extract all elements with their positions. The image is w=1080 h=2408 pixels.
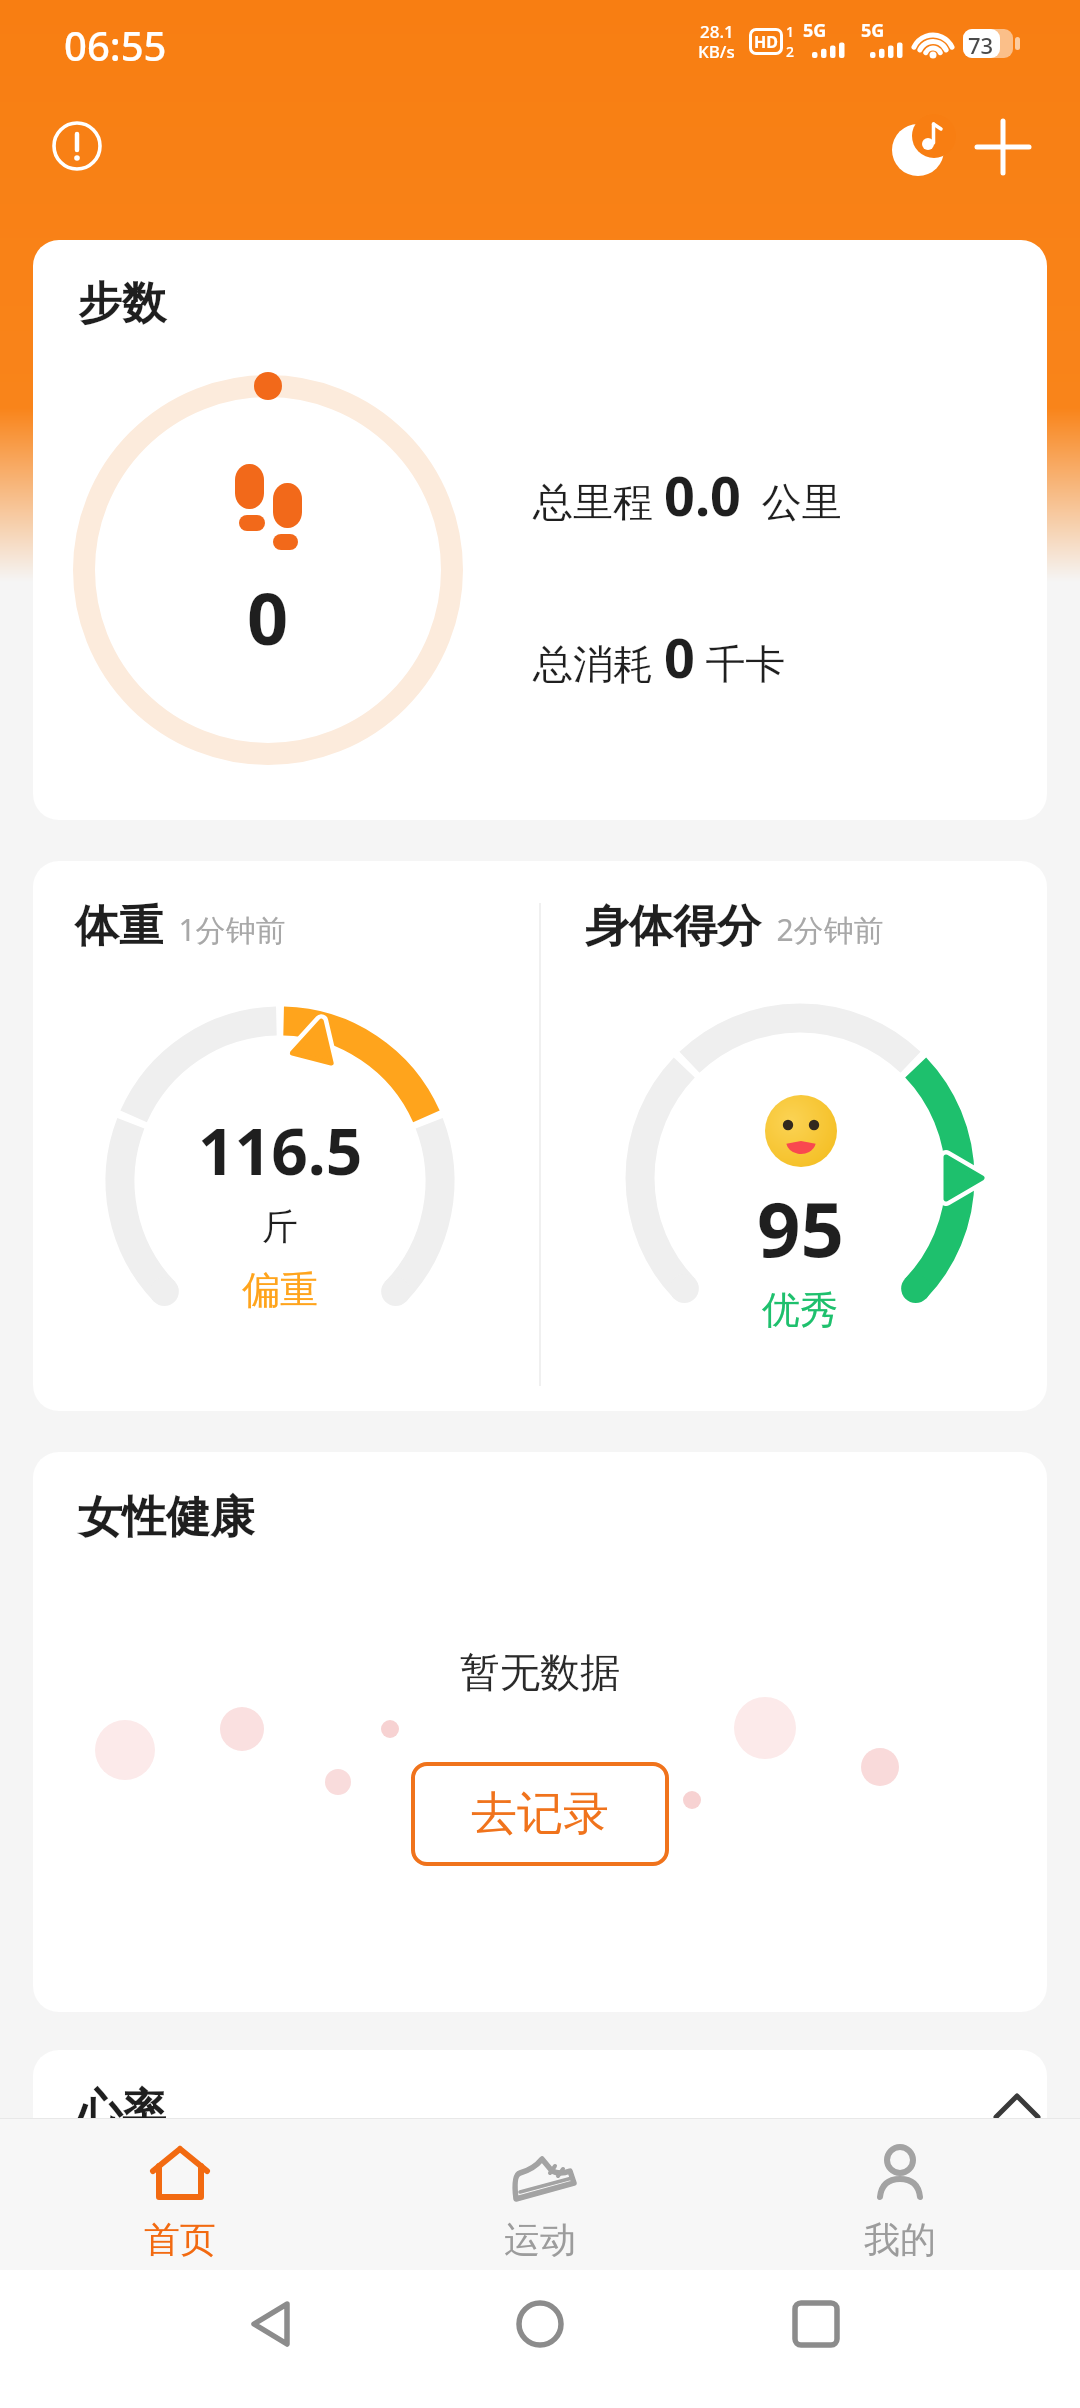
staticText: 身体得分 <box>585 899 761 954</box>
staticText: HD <box>754 31 778 53</box>
staticText: 0 <box>247 568 289 666</box>
staticText: 5G <box>861 18 885 43</box>
button[interactable] <box>540 861 1047 1411</box>
staticText: 0 <box>664 620 695 694</box>
button[interactable]: 我的 <box>720 2119 1080 2270</box>
staticText: 2 <box>786 42 795 61</box>
staticText: 73 <box>968 30 994 60</box>
staticText: 步数 <box>78 276 166 331</box>
button[interactable]: 首页 <box>0 2119 360 2270</box>
button[interactable]: 步数 <box>33 240 1047 820</box>
staticText: 0.0 <box>664 458 741 532</box>
staticText: 运动 <box>504 2217 576 2262</box>
staticText: 心率 <box>78 2083 166 2118</box>
button[interactable]: 心率 <box>33 2050 1047 2118</box>
staticText: KB/s <box>698 40 735 63</box>
staticText: 千卡 <box>695 635 786 690</box>
button[interactable]: 运动 <box>360 2119 720 2270</box>
button[interactable] <box>975 119 1031 175</box>
staticText: 95 <box>757 1176 844 1280</box>
staticText: 2分钟前 <box>761 909 884 950</box>
staticText: 06:55 <box>64 18 167 72</box>
staticText: 去记录 <box>471 1785 609 1843</box>
staticText: 斤 <box>262 1204 298 1249</box>
button[interactable] <box>720 2270 1080 2408</box>
staticText: 总消耗 <box>533 635 664 690</box>
staticText: 116.5 <box>198 1107 363 1194</box>
staticText: 女性健康 <box>78 1490 254 1545</box>
button[interactable] <box>50 119 104 173</box>
staticText: 我的 <box>864 2217 936 2262</box>
button[interactable] <box>0 2270 360 2408</box>
staticText: 偏重 <box>242 1266 318 1314</box>
staticText: 暂无数据 <box>460 1647 620 1697</box>
button[interactable] <box>33 861 540 1411</box>
staticText: 1分钟前 <box>163 909 286 950</box>
button[interactable] <box>360 2270 720 2408</box>
staticText: 优秀 <box>762 1286 838 1334</box>
staticText: 1 <box>786 22 795 41</box>
staticText: 28.1 <box>700 20 734 43</box>
staticText: 5G <box>803 18 827 43</box>
button[interactable]: 去记录 <box>411 1762 669 1866</box>
staticText: 总里程 <box>533 473 664 528</box>
button[interactable] <box>890 118 950 178</box>
staticText: 公里 <box>741 473 842 528</box>
staticText: 体重 <box>75 899 163 954</box>
staticText: 首页 <box>144 2217 216 2262</box>
